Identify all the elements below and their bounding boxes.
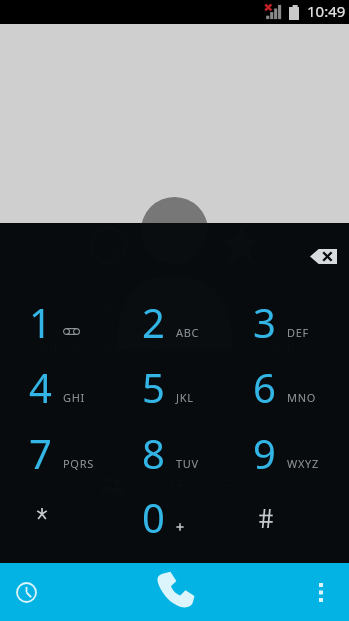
staticText: Les favoris et les contacts que vous app…: [12, 301, 337, 337]
button[interactable]: 6: [230, 354, 342, 420]
button[interactable]: 9: [230, 420, 342, 486]
staticText: 1: [29, 295, 52, 349]
staticText: 3: [253, 295, 276, 349]
staticText: 4: [29, 360, 52, 414]
staticText: 7: [29, 426, 52, 480]
button[interactable]: 2: [119, 289, 231, 355]
button[interactable]: 1: [6, 289, 118, 355]
staticText: TUV: [176, 456, 199, 471]
button[interactable]: [6, 484, 118, 550]
button[interactable]: [230, 484, 342, 550]
staticText: ABC: [176, 325, 200, 340]
staticText: PQRS: [63, 456, 94, 471]
button[interactable]: 3: [230, 289, 342, 355]
staticText: 6: [253, 360, 276, 414]
staticText: MNO: [287, 390, 317, 405]
button[interactable]: 4: [6, 354, 118, 420]
staticText: 5: [142, 360, 165, 414]
staticText: 2: [142, 295, 165, 349]
staticText: WXYZ: [287, 456, 319, 471]
staticText: DEF: [287, 325, 309, 340]
button[interactable]: More options: [233, 563, 349, 621]
button[interactable]: 5: [119, 354, 231, 420]
button[interactable]: 0: [119, 484, 231, 550]
button[interactable]: 7: [6, 420, 118, 486]
staticText: 10:49: [307, 1, 346, 21]
staticText: JKL: [176, 390, 194, 405]
button[interactable]: Recent calls: [0, 563, 116, 621]
staticText: 8: [142, 426, 165, 480]
button[interactable]: Dialpad: [116, 563, 233, 621]
button[interactable]: Backspace: [300, 236, 346, 276]
staticText: 0: [142, 490, 165, 544]
button[interactable]: 8: [119, 420, 231, 486]
staticText: GHI: [63, 390, 85, 405]
staticText: 9: [253, 426, 276, 480]
